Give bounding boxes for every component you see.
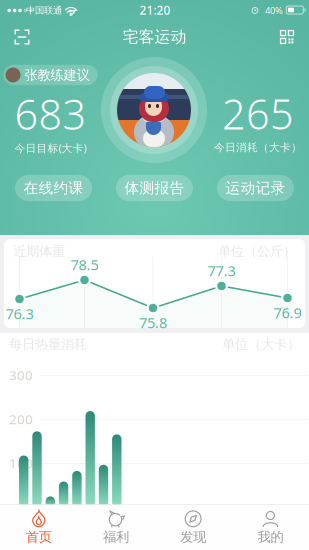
staticText: 100 <box>9 454 33 472</box>
staticText: 首页 <box>26 529 52 545</box>
staticText: 76.3 <box>5 304 33 323</box>
button[interactable]: 首页 <box>0 505 77 550</box>
staticText: 200 <box>9 410 33 428</box>
staticText: 77.3 <box>207 261 235 280</box>
staticText: 78.5 <box>70 255 98 274</box>
button[interactable]: 运动记录 <box>217 175 294 201</box>
staticText: 张教练建议 <box>24 67 89 83</box>
button[interactable]: 发现 <box>154 505 232 550</box>
staticText: 宅客运动 <box>122 27 186 47</box>
staticText: 体测报告 <box>124 179 184 197</box>
button[interactable]: 我的 <box>232 505 309 550</box>
button[interactable]: Scan <box>0 20 44 54</box>
button[interactable]: 福利 <box>77 505 154 550</box>
staticText: 今日目标(大卡) <box>14 141 86 155</box>
staticText: 我的 <box>257 529 283 545</box>
staticText: 76.9 <box>273 303 301 322</box>
staticText: 40% <box>265 4 283 17</box>
staticText: 今日消耗（大卡） <box>214 141 302 154</box>
staticText: 单位（大卡） <box>222 336 300 352</box>
staticText: 21:20 <box>139 2 170 18</box>
staticText: 单位（公斤） <box>218 243 296 259</box>
staticText: 近期体重 <box>13 243 65 259</box>
staticText: 75.8 <box>139 313 167 332</box>
button[interactable]: 在线约课 <box>15 175 92 201</box>
staticText: 福利 <box>103 529 129 545</box>
staticText: 300 <box>9 366 33 384</box>
staticText: 发现 <box>180 529 206 545</box>
button[interactable]: 体测报告 <box>116 175 193 201</box>
staticText: 每日热量消耗 <box>9 336 87 352</box>
button[interactable]: QR code <box>265 20 309 54</box>
staticText: 683 <box>14 86 86 141</box>
staticText: 265 <box>222 86 294 141</box>
staticText: 中国联通 <box>26 5 62 16</box>
staticText: 在线约课 <box>23 179 83 197</box>
staticText: 运动记录 <box>225 179 285 197</box>
